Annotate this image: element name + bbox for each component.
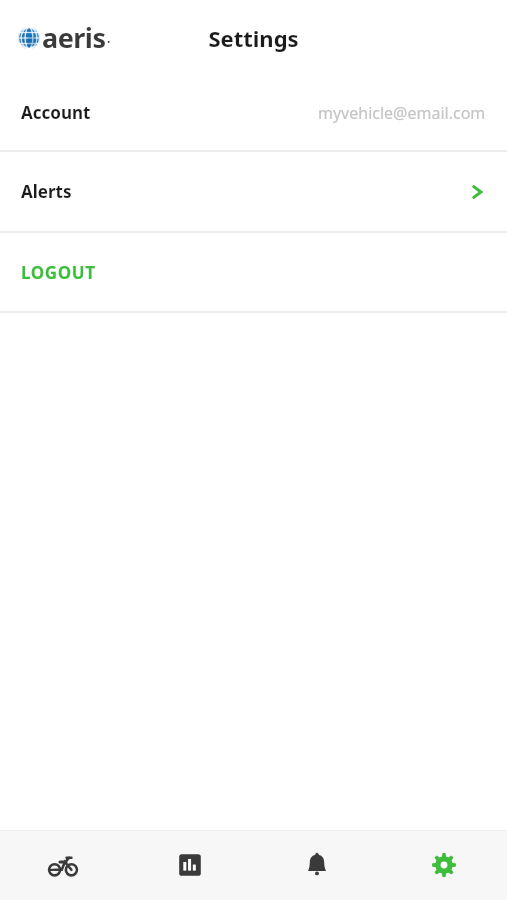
staticText: aeris — [42, 19, 106, 56]
staticText: LOGOUT — [21, 261, 96, 284]
button[interactable]: Alerts — [0, 152, 507, 231]
staticText: Alerts — [21, 180, 72, 203]
staticText: Settings — [208, 23, 299, 53]
staticText: myvehicle@email.com — [318, 102, 486, 124]
button[interactable]: Settings — [380, 830, 507, 900]
button[interactable]: Vehicle — [0, 830, 126, 900]
button[interactable]: Statistics — [126, 830, 253, 900]
button[interactable]: LOGOUT — [0, 233, 507, 311]
staticText: . — [107, 30, 111, 46]
staticText: Account — [21, 101, 91, 124]
button[interactable]: Notifications — [253, 830, 380, 900]
button[interactable]: Account — [0, 75, 507, 150]
